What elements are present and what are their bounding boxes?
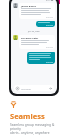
staticText: Seamless group messaging & priority aler… xyxy=(10,123,58,135)
staticText: James Bailey xyxy=(21,4,36,7)
staticText: Seamless xyxy=(10,111,45,121)
staticText: JUL 22, 9:08 xyxy=(28,30,40,33)
button[interactable]: 9:14 AM xyxy=(27,52,55,64)
staticText: 9:14 AM xyxy=(46,24,53,26)
button[interactable]: Add attachment xyxy=(16,87,19,90)
button[interactable]: 9:14 AM xyxy=(36,21,55,27)
button[interactable]: Add attachment xyxy=(14,85,54,91)
button[interactable]: Priyanka Patel xyxy=(13,35,55,49)
staticText: 9:12 AM xyxy=(46,46,53,48)
staticText: Priyanka Patel xyxy=(21,36,39,39)
button[interactable]: James Bailey xyxy=(13,3,55,19)
staticText: Message xyxy=(21,87,49,90)
button[interactable]: Send xyxy=(49,87,52,90)
staticText: 9:12 AM xyxy=(46,16,53,18)
staticText: 9:14 AM xyxy=(46,61,53,63)
staticText: 9:41 ▪▪ xyxy=(46,0,54,2)
